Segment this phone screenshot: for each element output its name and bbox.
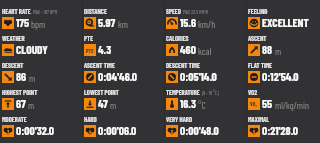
staticText: MODERATE [2,115,27,123]
staticText: 3 [7,129,10,135]
staticText: 5.97 [98,15,116,29]
other: Lowest point [84,98,96,110]
staticText: MAXIMAL [248,115,270,123]
staticText: EXCELLENT [262,15,309,29]
staticText: DISTANCE [84,7,107,15]
staticText: DESCENT [2,61,24,69]
button[interactable]: PTE [82,27,164,54]
staticText: °C [198,99,206,110]
staticText: MAX 22.5 KM/H [183,9,209,15]
staticText: VO2 [248,88,258,96]
staticText: PTE [86,47,94,54]
other: Ascent [248,44,260,56]
button[interactable]: HEART RATE [0,0,82,27]
staticText: m [275,45,282,56]
staticText: km/h [198,18,216,29]
button[interactable]: TEMPERATURE [164,81,246,108]
staticText: 86 [16,69,27,83]
other: Descent time [166,71,178,83]
staticText: 15.6 [180,15,196,29]
staticText: 0:05'14.0 [180,69,217,83]
other: Calories [166,44,178,56]
button[interactable]: CALORIES [164,27,246,54]
button[interactable]: ASCENT TIME [82,54,164,81]
button[interactable]: ASCENT [246,27,320,54]
button[interactable]: MAXIMAL [246,108,320,135]
button[interactable]: WEATHER [0,27,82,54]
staticText: VERY HARD [166,115,193,123]
staticText: 460 [180,42,196,56]
other: Heart rate zone [2,125,14,137]
staticText: PTE [84,34,94,42]
button[interactable]: VERY HARD [164,108,246,135]
staticText: HEART RATE [2,7,31,15]
staticText: kcal [198,45,212,56]
staticText: 0:12'54.0 [262,69,299,83]
staticText: ml/kg/min [275,99,310,110]
other: Flat time [248,71,260,83]
staticText: HARD [84,115,97,123]
other: Heart rate [2,17,14,29]
staticText: 16.3 [180,96,196,110]
button[interactable]: DESCENT [0,54,82,81]
staticText: 0:00'32.0 [16,123,55,137]
staticText: 175 [16,15,29,29]
staticText: ASCENT [248,34,267,42]
other: Heart rate zone [84,125,96,137]
staticText: 0:00'48.0 [180,123,219,137]
button[interactable]: LOWEST POINT [82,81,164,108]
staticText: ASCENT TIME [84,61,115,69]
staticText: 0:00'06.0 [98,123,137,137]
other: Heart rate zone [248,125,260,137]
button[interactable]: VO2 [246,81,320,108]
staticText: CLOUDY [16,42,48,56]
other: Speed [166,17,178,29]
staticText: km [118,18,129,29]
staticText: 5 [253,129,256,135]
button[interactable]: HARD [82,108,164,135]
staticText: 0:21'28.0 [262,123,298,137]
staticText: bpm [31,18,46,29]
other: VO2 [248,98,260,110]
other: Heart rate zone [166,125,178,137]
button[interactable]: FEELING [246,0,320,27]
staticText: 88 [262,42,273,56]
other: Weather [2,44,14,56]
button[interactable]: MODERATE [0,108,82,135]
other: Ascent time [84,71,96,83]
staticText: 0:04'46.0 [98,69,138,83]
staticText: DESCENT TIME [166,61,200,69]
other: Descent [2,71,14,83]
staticText: m [29,72,36,83]
staticText: FLAT TIME [248,61,272,69]
staticText: SPEED [166,7,181,15]
staticText: 55 [262,96,273,110]
staticText: 4 [89,129,92,135]
staticText: VO₂ [250,100,258,108]
staticText: TEMPERATURE [166,88,200,96]
staticText: 47 [98,96,108,110]
staticText: MAX - 187 BPM [33,9,58,15]
button[interactable]: DESCENT TIME [164,54,246,81]
staticText: m [110,99,117,110]
button[interactable]: FLAT TIME [246,54,320,81]
staticText: m [28,99,35,110]
staticText: LOWEST POINT [84,88,119,96]
button[interactable]: SPEED [164,0,246,27]
other: Feeling [248,17,260,29]
other: Distance [84,17,96,29]
staticText: (9 - 18 °C) [202,90,219,96]
button[interactable]: HIGHEST POINT [0,81,82,108]
staticText: HIGHEST POINT [2,88,38,96]
staticText: FEELING [248,7,268,15]
other: Temperature [166,98,178,110]
staticText: 4.3 [98,42,112,56]
staticText: WEATHER [2,34,25,42]
button[interactable]: DISTANCE [82,0,164,27]
staticText: 67 [16,96,26,110]
other: PTE [84,44,96,56]
other: Highest point [2,98,14,110]
staticText: 5 [171,129,174,135]
staticText: CALORIES [166,34,189,42]
